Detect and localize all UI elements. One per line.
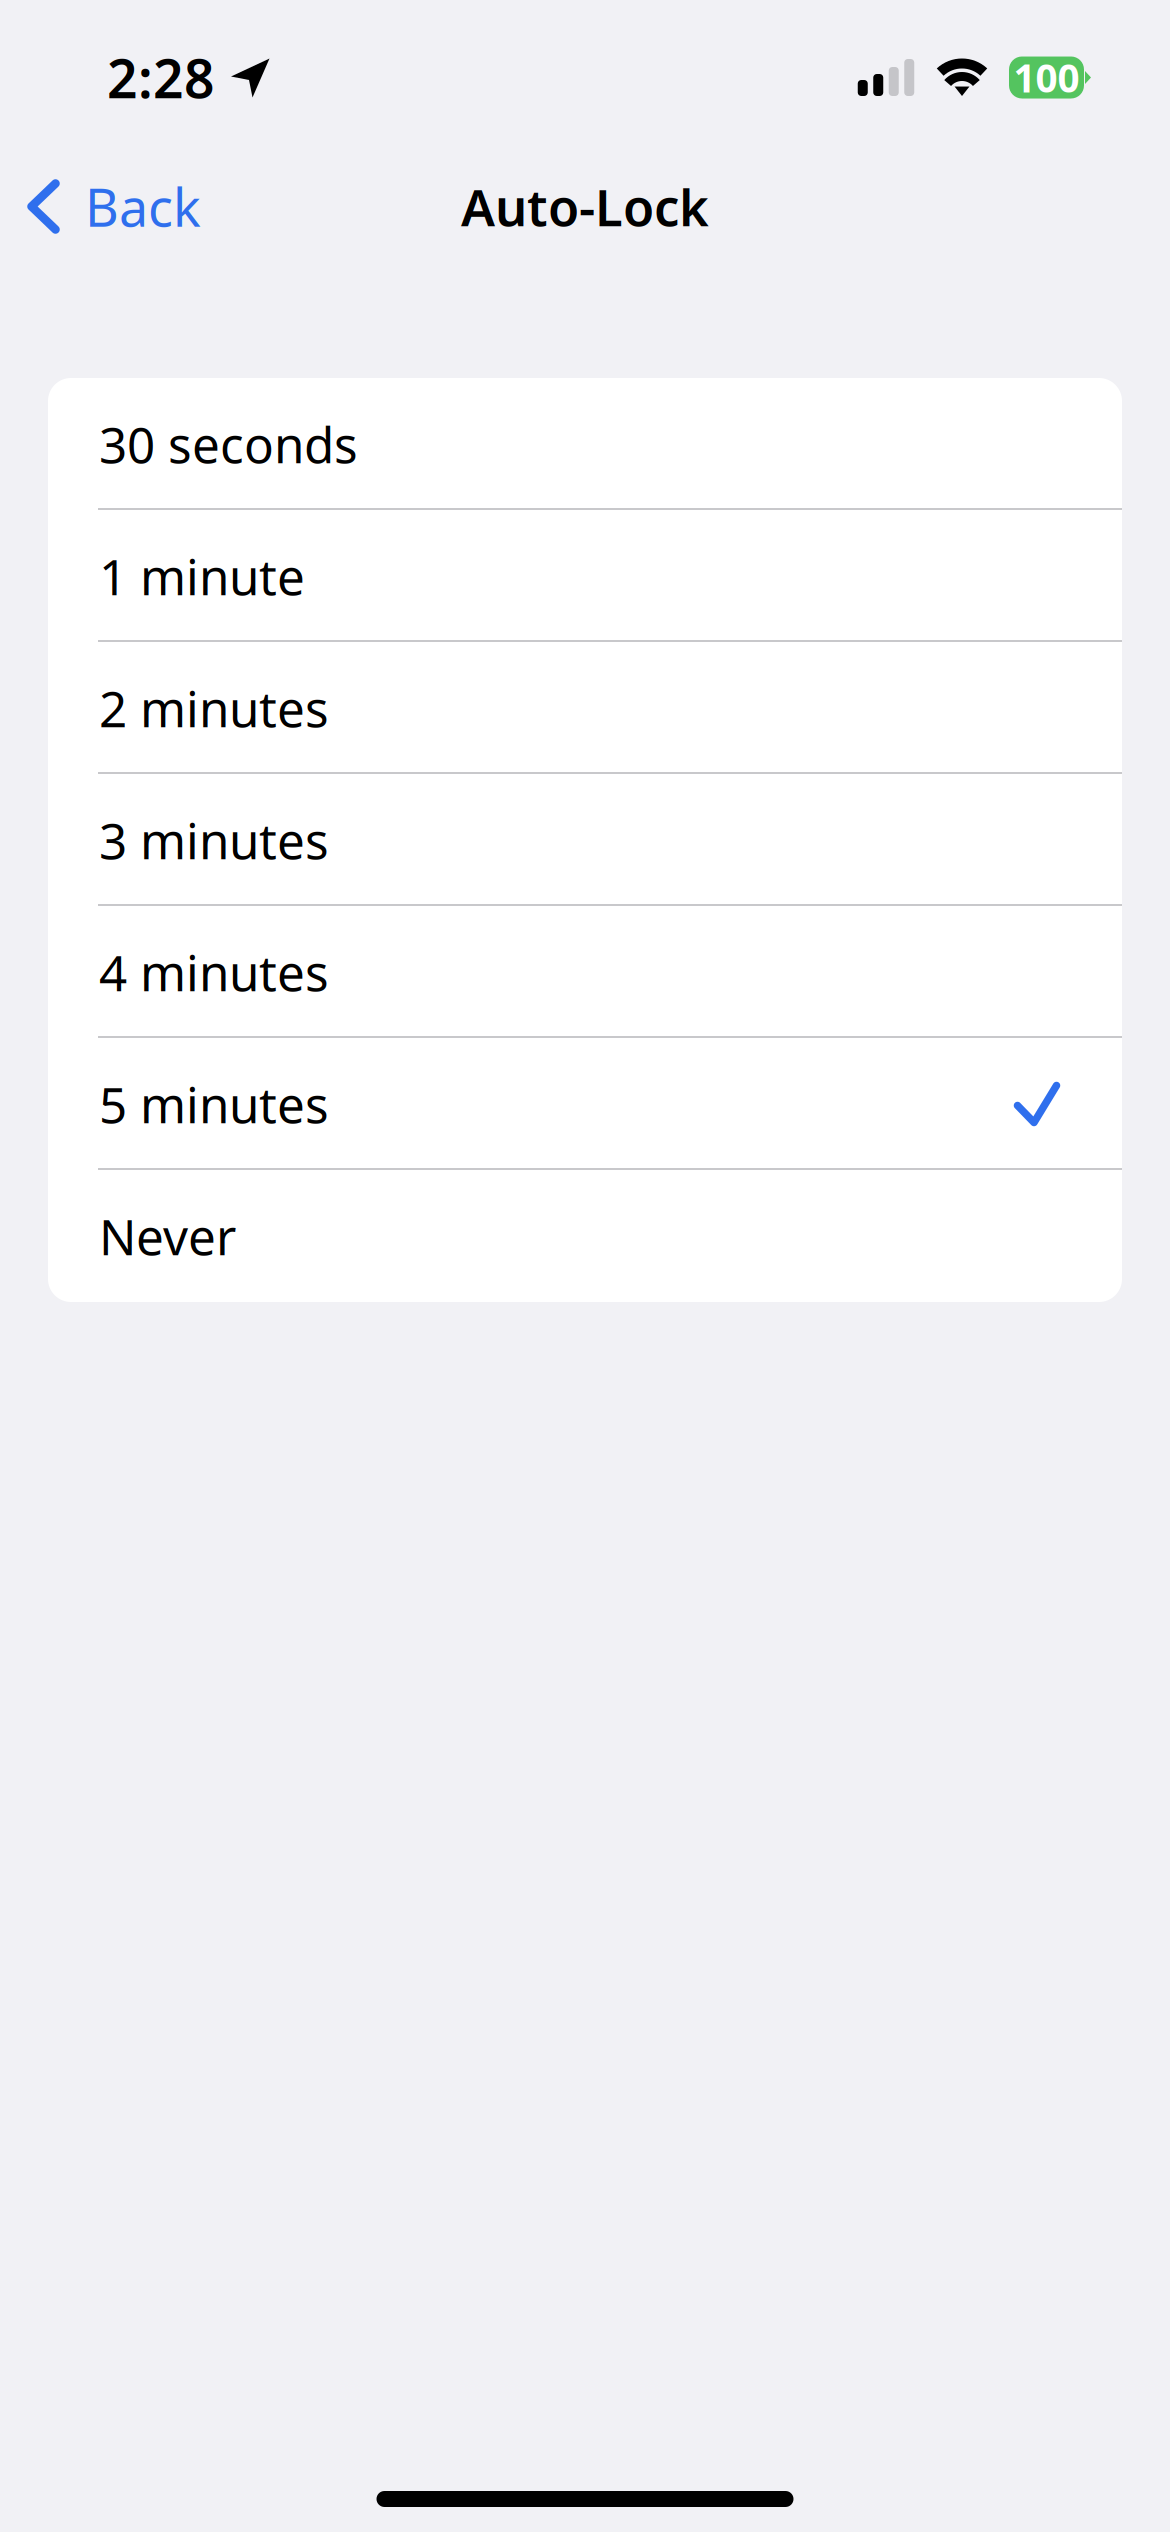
- staticText: 1 minute: [99, 543, 305, 609]
- staticText: 5 minutes: [99, 1071, 329, 1137]
- staticText: 2 minutes: [99, 675, 329, 741]
- staticText: Never: [99, 1203, 236, 1269]
- staticText: Auto-Lock: [461, 173, 709, 240]
- button[interactable]: 4 minutes: [48, 906, 1122, 1038]
- staticText: 100: [1013, 52, 1079, 103]
- button[interactable]: 30 seconds: [48, 378, 1122, 510]
- staticText: 30 seconds: [99, 411, 358, 477]
- staticText: 2:28: [107, 42, 215, 113]
- button[interactable]: 3 minutes: [48, 774, 1122, 906]
- button[interactable]: 2 minutes: [48, 642, 1122, 774]
- button[interactable]: 1 minute: [48, 510, 1122, 642]
- button[interactable]: 5 minutes: [48, 1038, 1122, 1170]
- button[interactable]: Back: [0, 155, 225, 258]
- button[interactable]: Never: [48, 1170, 1122, 1302]
- staticText: 3 minutes: [99, 807, 329, 873]
- staticText: 4 minutes: [99, 939, 329, 1005]
- staticText: Back: [85, 172, 201, 241]
